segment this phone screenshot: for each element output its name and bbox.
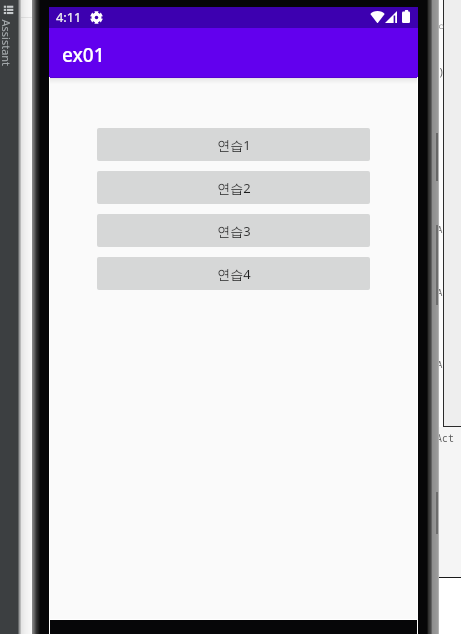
staticText: 연습2: [217, 179, 251, 197]
staticText: Act: [436, 431, 454, 445]
staticText: A: [437, 358, 443, 370]
button[interactable]: 연습4: [97, 257, 370, 290]
button[interactable]: Settings: [90, 11, 103, 24]
staticText: A: [437, 223, 443, 235]
staticText: Assistant: [0, 19, 13, 69]
staticText: ): [438, 64, 445, 79]
staticText: 4:11: [56, 8, 82, 25]
button[interactable]: Assistant: [1, 3, 16, 18]
staticText: 연습1: [217, 136, 251, 154]
button[interactable]: 연습1: [97, 128, 370, 161]
staticText: ex01: [62, 42, 105, 68]
staticText: 연습4: [217, 265, 251, 283]
staticText: ㅇ: [437, 21, 446, 32]
staticText: A: [437, 286, 443, 298]
staticText: 연습3: [217, 222, 251, 240]
button[interactable]: 연습3: [97, 214, 370, 247]
button[interactable]: 연습2: [97, 171, 370, 204]
